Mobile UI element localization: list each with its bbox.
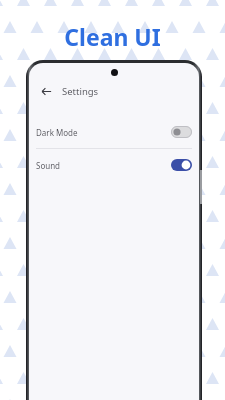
button[interactable]: Dark Mode <box>29 116 199 148</box>
staticText: Settings <box>62 85 99 98</box>
staticText: Sound <box>36 160 61 171</box>
button[interactable]: Off <box>171 126 192 138</box>
staticText: Dark Mode <box>36 127 78 138</box>
button[interactable]: Back <box>37 82 55 100</box>
button[interactable]: Sound <box>29 149 199 181</box>
button[interactable]: On <box>171 159 192 171</box>
staticText: Clean UI <box>0 21 225 52</box>
